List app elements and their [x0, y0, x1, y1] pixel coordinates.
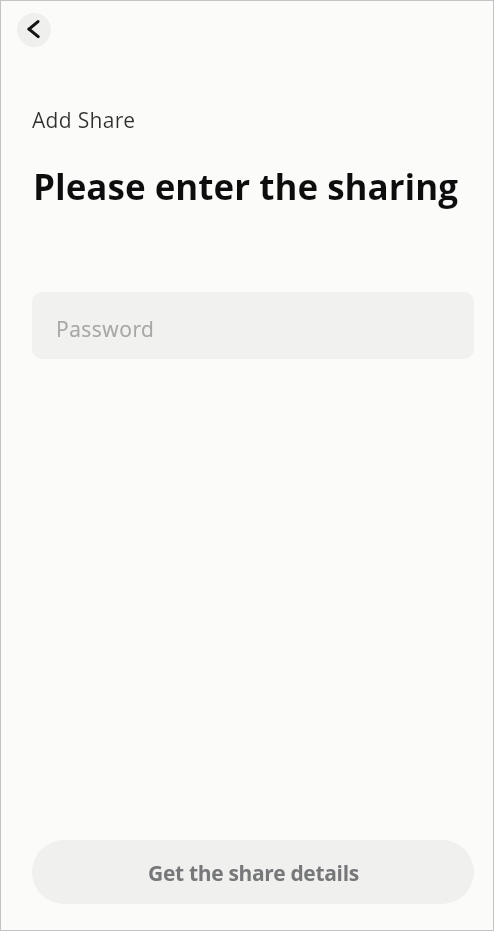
button[interactable]: Back [17, 13, 51, 47]
button[interactable]: Get the share details [32, 840, 474, 904]
staticText: Add Share [32, 106, 136, 135]
staticText: Get the share details [148, 859, 359, 888]
button[interactable]: Password [32, 292, 474, 359]
staticText: Please enter the sharing [33, 163, 459, 211]
staticText: Password [56, 315, 155, 344]
